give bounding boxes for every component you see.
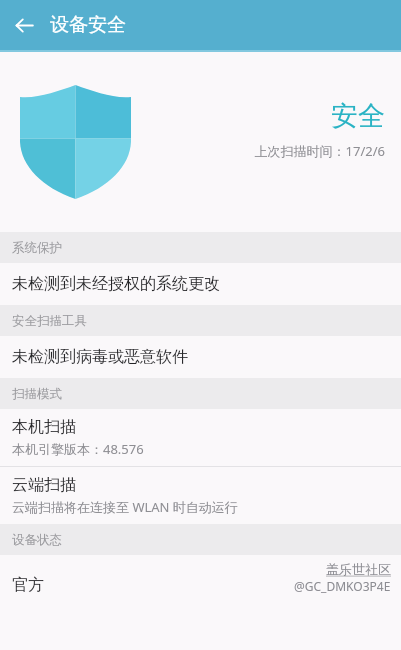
staticText: 官方 [12, 575, 44, 595]
button[interactable]: 云端扫描 [0, 467, 401, 524]
staticText: 设备状态 [12, 532, 62, 548]
button[interactable]: Back [5, 6, 43, 44]
staticText: 安全 [331, 99, 385, 133]
staticText: 上次扫描时间：17/2/6 [254, 142, 385, 160]
staticText: 扫描模式 [12, 386, 62, 402]
staticText: 系统保护 [12, 240, 62, 256]
button[interactable]: 未检测到病毒或恶意软件 [0, 336, 401, 378]
staticText: 未检测到病毒或恶意软件 [12, 347, 188, 367]
staticText: 未检测到未经授权的系统更改 [12, 274, 220, 294]
staticText: @GC_DMKO3P4E [294, 578, 391, 594]
staticText: 本机引擎版本：48.576 [12, 440, 144, 458]
staticText: 云端扫描将在连接至 WLAN 时自动运行 [12, 498, 238, 516]
staticText: 云端扫描 [12, 475, 76, 495]
staticText: 盖乐世社区 [326, 561, 391, 577]
staticText: 安全扫描工具 [12, 313, 87, 329]
button[interactable]: 本机扫描 [0, 409, 401, 466]
button[interactable]: 未检测到未经授权的系统更改 [0, 263, 401, 305]
staticText: 本机扫描 [12, 417, 76, 437]
staticText: 设备安全 [50, 13, 126, 37]
button[interactable]: 官方 [0, 555, 401, 615]
